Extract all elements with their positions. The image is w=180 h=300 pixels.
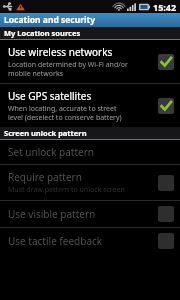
button[interactable]: Toggle setting [158,98,174,114]
button[interactable]: Require pattern [0,165,180,200]
button[interactable]: Set unlock pattern [0,140,180,164]
staticText: When locating, accurate to street level … [8,104,122,122]
staticText: Screen unlock pattern [4,128,87,138]
button[interactable]: Use GPS satellites [0,84,180,127]
staticText: Use tactile feedback [8,234,103,248]
staticText: Location determined by Wi-Fi and/or mobi… [8,60,128,78]
staticText: Use GPS satellites [8,89,92,103]
button[interactable]: Toggle setting [158,233,174,249]
staticText: Use wireless networks [8,45,113,59]
button[interactable]: Toggle setting [158,175,174,191]
staticText: 15:42 [153,1,177,13]
button[interactable]: Toggle setting [158,54,174,70]
button[interactable]: Use visible pattern [0,201,180,227]
staticText: My Location sources [4,28,81,38]
button[interactable]: Use tactile feedback [0,228,180,254]
button[interactable]: Use wireless networks [0,40,180,83]
staticText: Require pattern [8,170,82,184]
button[interactable]: Toggle setting [158,206,174,222]
staticText: Location and security [4,14,96,26]
staticText: Set unlock pattern [8,145,94,159]
staticText: Must draw pattern to unlock screen [8,185,125,195]
staticText: Use visible pattern [8,207,96,221]
